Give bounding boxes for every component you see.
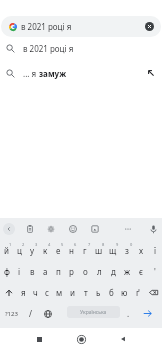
button[interactable]: Українська [67,306,120,318]
staticText: 2 [22,242,25,247]
button[interactable]: ь [92,282,105,303]
button[interactable]: а [39,261,52,282]
staticText: о [83,266,88,277]
button[interactable]: ю [118,282,131,303]
button[interactable]: л [92,261,106,282]
button[interactable]: ?123 [3,303,20,324]
button[interactable]: ' [148,261,162,282]
staticText: г [83,245,87,256]
staticText: 6 [74,242,77,247]
staticText: в [30,266,35,277]
button[interactable]: sticker [86,218,104,240]
button[interactable]: 5 [52,240,65,261]
staticText: а [43,266,48,277]
button[interactable]: ї [148,240,162,261]
button[interactable]: ч [29,282,41,303]
staticText: / [29,308,32,319]
button[interactable]: Shift [0,282,17,303]
button[interactable]: . [123,303,134,324]
button[interactable]: ґ [131,282,144,303]
button[interactable]: Search [140,303,155,324]
staticText: я [21,287,26,298]
button[interactable]: Home [60,328,102,350]
button[interactable]: о [78,261,92,282]
staticText: 4 [48,242,51,247]
button[interactable]: 0 [120,240,134,261]
staticText: . [127,308,130,319]
staticText: п [56,266,61,277]
button[interactable]: и [66,282,79,303]
button[interactable]: д [106,261,120,282]
button[interactable]: 3 [26,240,39,261]
button[interactable]: 4 [39,240,52,261]
button[interactable]: / [24,303,37,324]
staticText: х [139,245,144,256]
staticText: ю [121,287,128,298]
button[interactable]: є [134,261,148,282]
staticText: і [18,266,21,277]
staticText: й [4,245,9,256]
button[interactable]: б [105,282,118,303]
staticText: ж [124,266,131,277]
staticText: ш [95,245,103,256]
button[interactable]: ... я [0,60,162,86]
staticText: к [43,245,48,256]
staticText: ї [154,245,157,256]
staticText: 8 [102,242,105,247]
staticText: ч [33,287,38,298]
button[interactable]: п [52,261,65,282]
button[interactable]: Insert query [144,66,158,80]
staticText: е [56,245,61,256]
staticText: 5 [61,242,64,247]
staticText: щ [109,245,117,256]
button[interactable]: Voice input [144,218,162,240]
button[interactable]: clipboard [21,218,39,240]
button[interactable]: в 2021 році я [1,16,161,37]
button[interactable]: ж [120,261,134,282]
staticText: ' [154,266,156,277]
button[interactable]: 2 [13,240,26,261]
button[interactable]: 1 [0,240,13,261]
button[interactable]: settings [42,218,60,240]
button[interactable]: emoji [64,218,82,240]
button[interactable]: Clear search [145,22,154,31]
button[interactable]: р [65,261,78,282]
button[interactable]: х [134,240,148,261]
button[interactable]: 8 [92,240,106,261]
staticText: у [30,245,35,256]
button[interactable]: Back [102,328,144,350]
staticText: д [111,266,116,277]
button[interactable]: Collapse toolbar [0,218,18,240]
staticText: 0 [130,242,133,247]
button[interactable]: т [79,282,92,303]
staticText: ф [4,266,10,277]
button[interactable]: і [13,261,26,282]
button[interactable]: я [17,282,29,303]
staticText: 9 [116,242,119,247]
button[interactable]: ф [0,261,13,282]
button[interactable]: Recents [18,328,60,350]
button[interactable]: Change language [41,303,54,324]
button[interactable]: 6 [65,240,78,261]
staticText: м [56,287,63,298]
staticText: р [69,266,74,277]
staticText: ?123 [5,310,18,318]
button[interactable]: с [41,282,53,303]
staticText: и [70,287,75,298]
button[interactable]: 7 [78,240,92,261]
staticText: 3 [35,242,38,247]
button[interactable]: м [53,282,66,303]
button[interactable]: 9 [106,240,120,261]
staticText: ґ [136,287,140,298]
staticText: б [109,287,114,298]
button[interactable]: more [119,218,137,240]
staticText: в 2021 році я [23,43,74,54]
staticText: є [139,266,143,277]
staticText: ц [17,245,22,256]
button[interactable]: в 2021 році я [0,37,162,60]
button[interactable]: в [26,261,39,282]
staticText: л [97,266,102,277]
staticText: з [125,245,129,256]
button[interactable]: Backspace [144,282,162,303]
staticText: с [45,287,49,298]
